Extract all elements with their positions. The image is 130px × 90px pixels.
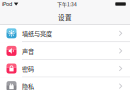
- staticText: 隐私: [22, 82, 34, 90]
- staticText: 下午1:34: [57, 0, 77, 7]
- button[interactable]: 隐私: [0, 77, 130, 90]
- staticText: 墙纸与亮度: [22, 29, 52, 38]
- staticText: 声音: [22, 46, 34, 55]
- staticText: iPod: [2, 1, 12, 7]
- button[interactable]: 墙纸与亮度: [0, 24, 130, 42]
- button[interactable]: 密码: [0, 60, 130, 77]
- staticText: 密码: [22, 64, 34, 73]
- button[interactable]: 声音: [0, 42, 130, 60]
- staticText: 设置: [58, 12, 72, 22]
